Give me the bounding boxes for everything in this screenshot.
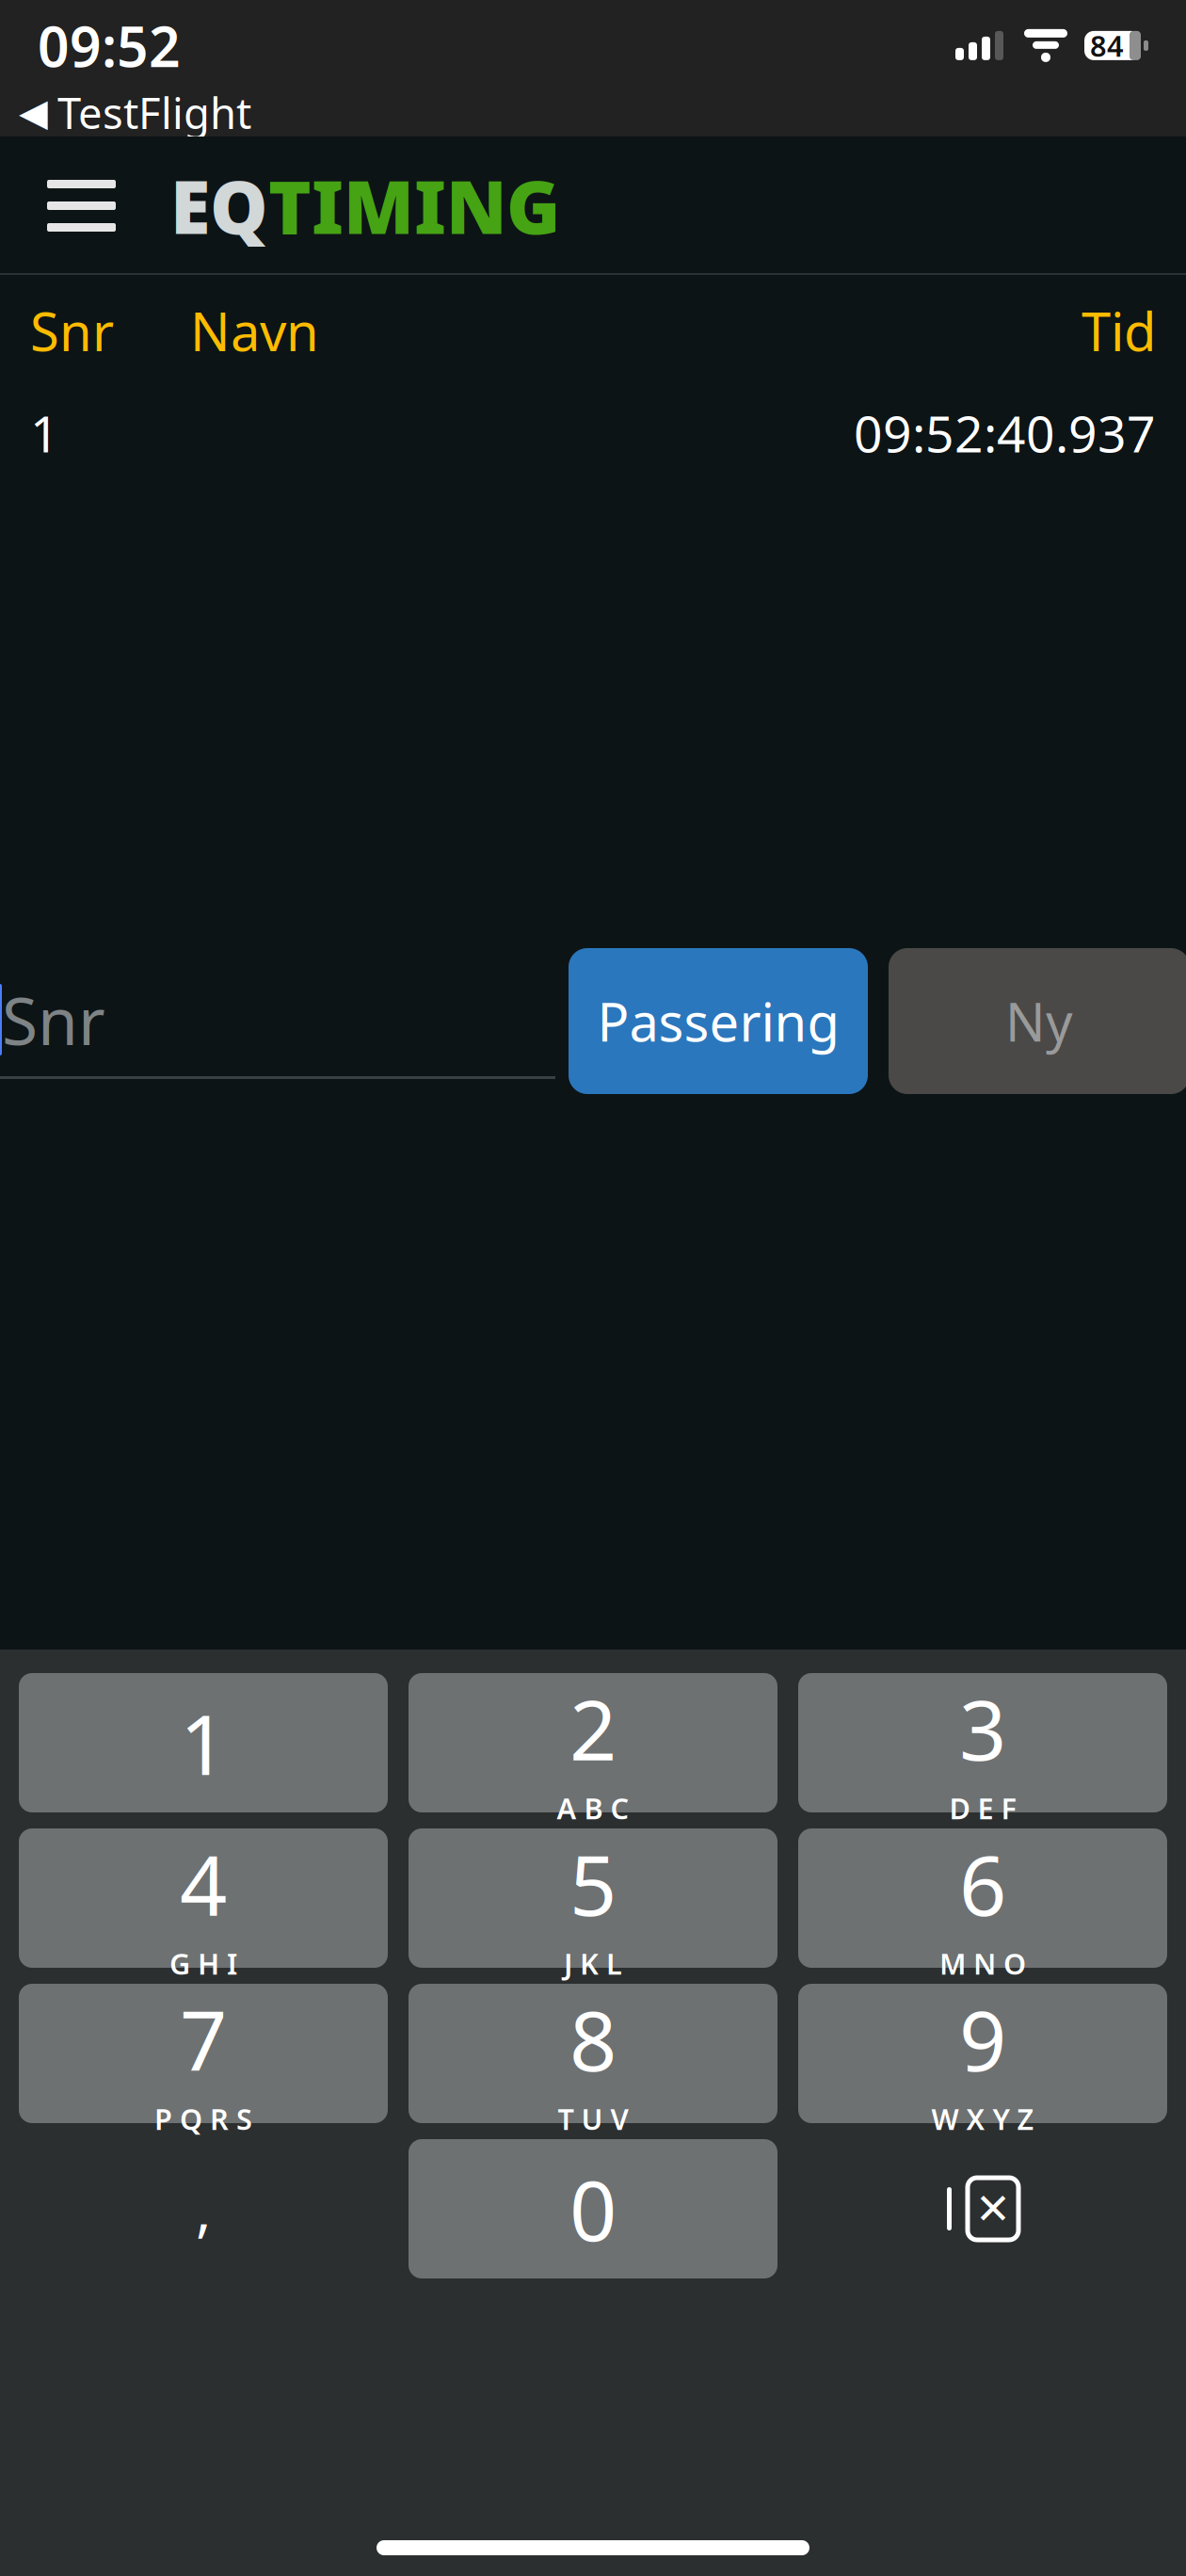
staticText: ◀ (19, 91, 48, 134)
staticText: W X Y Z (931, 2100, 1034, 2138)
button[interactable]: 2 (409, 1673, 777, 1812)
staticText: G H I (169, 1944, 237, 1983)
staticText: Navn (190, 296, 319, 366)
staticText: Tid (1082, 296, 1156, 366)
staticText: A B C (557, 1789, 629, 1827)
staticText: Passering (597, 986, 839, 1056)
staticText: 2 (569, 1673, 617, 1783)
staticText: Snr (2, 976, 105, 1063)
staticText: , (196, 2170, 211, 2247)
staticText: J K L (564, 1944, 622, 1983)
staticText: EQ (170, 157, 268, 254)
staticText: P Q R S (154, 2100, 252, 2138)
staticText: T U V (558, 2100, 628, 2138)
staticText: 8 (569, 1984, 617, 2094)
button[interactable]: 1 (19, 1673, 388, 1812)
button[interactable]: 6 (798, 1828, 1167, 1968)
staticText: 3 (959, 1673, 1006, 1783)
staticText: TestFlight (57, 84, 251, 141)
staticText: M N O (939, 1944, 1026, 1983)
button[interactable]: 4 (19, 1828, 388, 1968)
staticText: Snr (30, 296, 114, 366)
button[interactable]: 3 (798, 1673, 1167, 1812)
button[interactable]: 9 (798, 1984, 1167, 2123)
staticText: 09:52:40.937 (854, 400, 1156, 466)
staticText: 09:52 (38, 9, 181, 82)
button[interactable]: 0 (409, 2139, 777, 2278)
staticText: 1 (30, 400, 59, 466)
button[interactable]: Comma (19, 2139, 388, 2278)
button[interactable]: Delete (798, 2139, 1167, 2278)
staticText: 84 (1090, 26, 1124, 65)
staticText: 9 (959, 1984, 1006, 2094)
staticText: D E F (949, 1789, 1016, 1827)
staticText: 1 (180, 1688, 227, 1798)
button[interactable]: 5 (409, 1828, 777, 1968)
staticText: Ny (1005, 986, 1073, 1056)
button[interactable]: 7 (19, 1984, 388, 2123)
staticText: TIMING (268, 157, 560, 254)
staticText: ✕ (975, 2185, 1011, 2233)
staticText: 5 (569, 1829, 617, 1939)
staticText: 7 (180, 1984, 227, 2094)
button[interactable]: 8 (409, 1984, 777, 2123)
staticText: 4 (180, 1829, 227, 1939)
staticText: 0 (569, 2154, 617, 2264)
button[interactable]: Menu (21, 155, 142, 256)
staticText: 6 (959, 1829, 1006, 1939)
button[interactable]: Ny (889, 948, 1186, 1094)
button[interactable]: Passering (569, 948, 868, 1094)
